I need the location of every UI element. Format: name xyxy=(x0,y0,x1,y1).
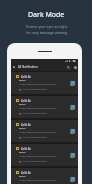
staticText: Rasmi xyxy=(19,79,26,82)
staticText: Kalid Ah xyxy=(21,99,31,103)
button[interactable]: Search xyxy=(65,63,71,71)
staticText: Rasmi xyxy=(19,127,26,130)
staticText: 12:04 AM 3:30 pressure xyxy=(22,160,47,163)
staticText: 12:04 AM 3:30 pressure xyxy=(22,88,47,91)
staticText: for easy message viewing xyxy=(26,30,67,35)
button[interactable]: Open navigation menu xyxy=(11,63,17,71)
staticText: I heard that its going to be even the xyxy=(19,107,56,110)
staticText: All Notification xyxy=(18,65,38,69)
staticText: Rasmi xyxy=(19,175,26,178)
staticText: I heard that its going to be even the xyxy=(19,131,56,134)
staticText: I heard that its going to be even the xyxy=(19,83,56,86)
staticText: Rasmi xyxy=(19,151,26,154)
staticText: Kalid Ah xyxy=(21,171,31,175)
button[interactable]: Kalid Ah xyxy=(11,72,78,94)
button[interactable]: Kalid Ah xyxy=(11,120,78,142)
staticText: Protect your eyes at night xyxy=(26,24,67,29)
staticText: Kalid Ah xyxy=(21,123,31,127)
button[interactable]: Profile xyxy=(72,63,78,71)
button[interactable]: Kalid Ah xyxy=(11,144,78,166)
staticText: 12:04 AM 3:30 pressure xyxy=(22,136,47,139)
staticText: I heard that its going to be even the xyxy=(19,179,56,182)
staticText: Kalid Ah xyxy=(21,75,31,79)
staticText: I heard that its going to be even the xyxy=(19,155,56,158)
staticText: Dark Mode xyxy=(28,10,65,20)
button[interactable]: Kalid Ah xyxy=(11,168,78,184)
staticText: Rasmi xyxy=(19,103,26,106)
staticText: 12:04 AM 3:30 pressure xyxy=(22,112,47,115)
button[interactable]: Kalid Ah xyxy=(11,96,78,118)
staticText: Kalid Ah xyxy=(21,147,31,151)
